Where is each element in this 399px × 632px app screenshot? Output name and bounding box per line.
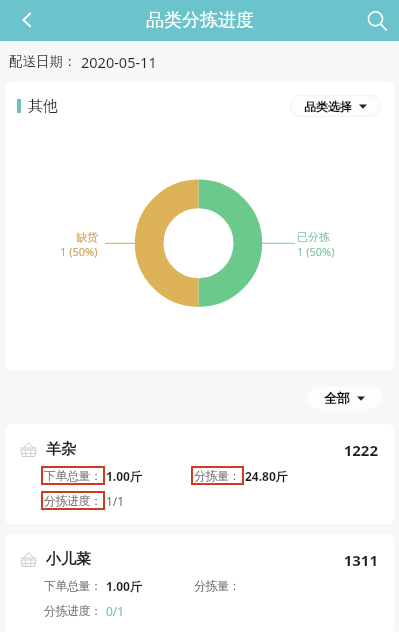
staticText: 羊杂 bbox=[46, 440, 76, 458]
staticText: 1 (50%) bbox=[60, 244, 98, 259]
staticText: 全部 bbox=[324, 390, 350, 406]
button[interactable]: 全部 bbox=[307, 387, 382, 409]
staticText: 1.00斤 bbox=[106, 578, 142, 594]
staticText: 已分拣 bbox=[297, 230, 330, 244]
staticText: 1222 bbox=[5, 440, 378, 460]
staticText: 1/1 bbox=[106, 493, 125, 509]
button[interactable]: 羊杂 bbox=[5, 424, 394, 524]
staticText: 下单总量： bbox=[44, 578, 102, 593]
staticText: 品类分拣进度 bbox=[146, 9, 254, 32]
staticText: 下单总量： bbox=[44, 468, 102, 483]
button[interactable]: Search bbox=[355, 0, 399, 41]
staticText: 1311 bbox=[5, 550, 378, 570]
staticText: 分拣量： bbox=[194, 468, 241, 483]
staticText: 2020-05-11 bbox=[81, 52, 157, 72]
button[interactable]: 小儿菜 bbox=[5, 534, 394, 632]
staticText: 品类选择 bbox=[304, 99, 352, 114]
staticText: 其他 bbox=[28, 97, 58, 116]
staticText: 1 (50%) bbox=[297, 244, 335, 259]
staticText: 分拣进度： bbox=[44, 493, 102, 508]
staticText: 缺货 bbox=[76, 230, 98, 244]
staticText: 分拣进度： bbox=[44, 603, 102, 618]
staticText: 0/1 bbox=[106, 603, 125, 619]
staticText: 配送日期： bbox=[9, 53, 77, 70]
button[interactable]: Back bbox=[0, 0, 46, 41]
staticText: 24.80斤 bbox=[245, 468, 288, 484]
staticText: 1.00斤 bbox=[106, 468, 142, 484]
staticText: 小儿菜 bbox=[46, 550, 91, 568]
button[interactable]: 品类选择 bbox=[290, 95, 381, 117]
staticText: 分拣量： bbox=[194, 578, 241, 593]
